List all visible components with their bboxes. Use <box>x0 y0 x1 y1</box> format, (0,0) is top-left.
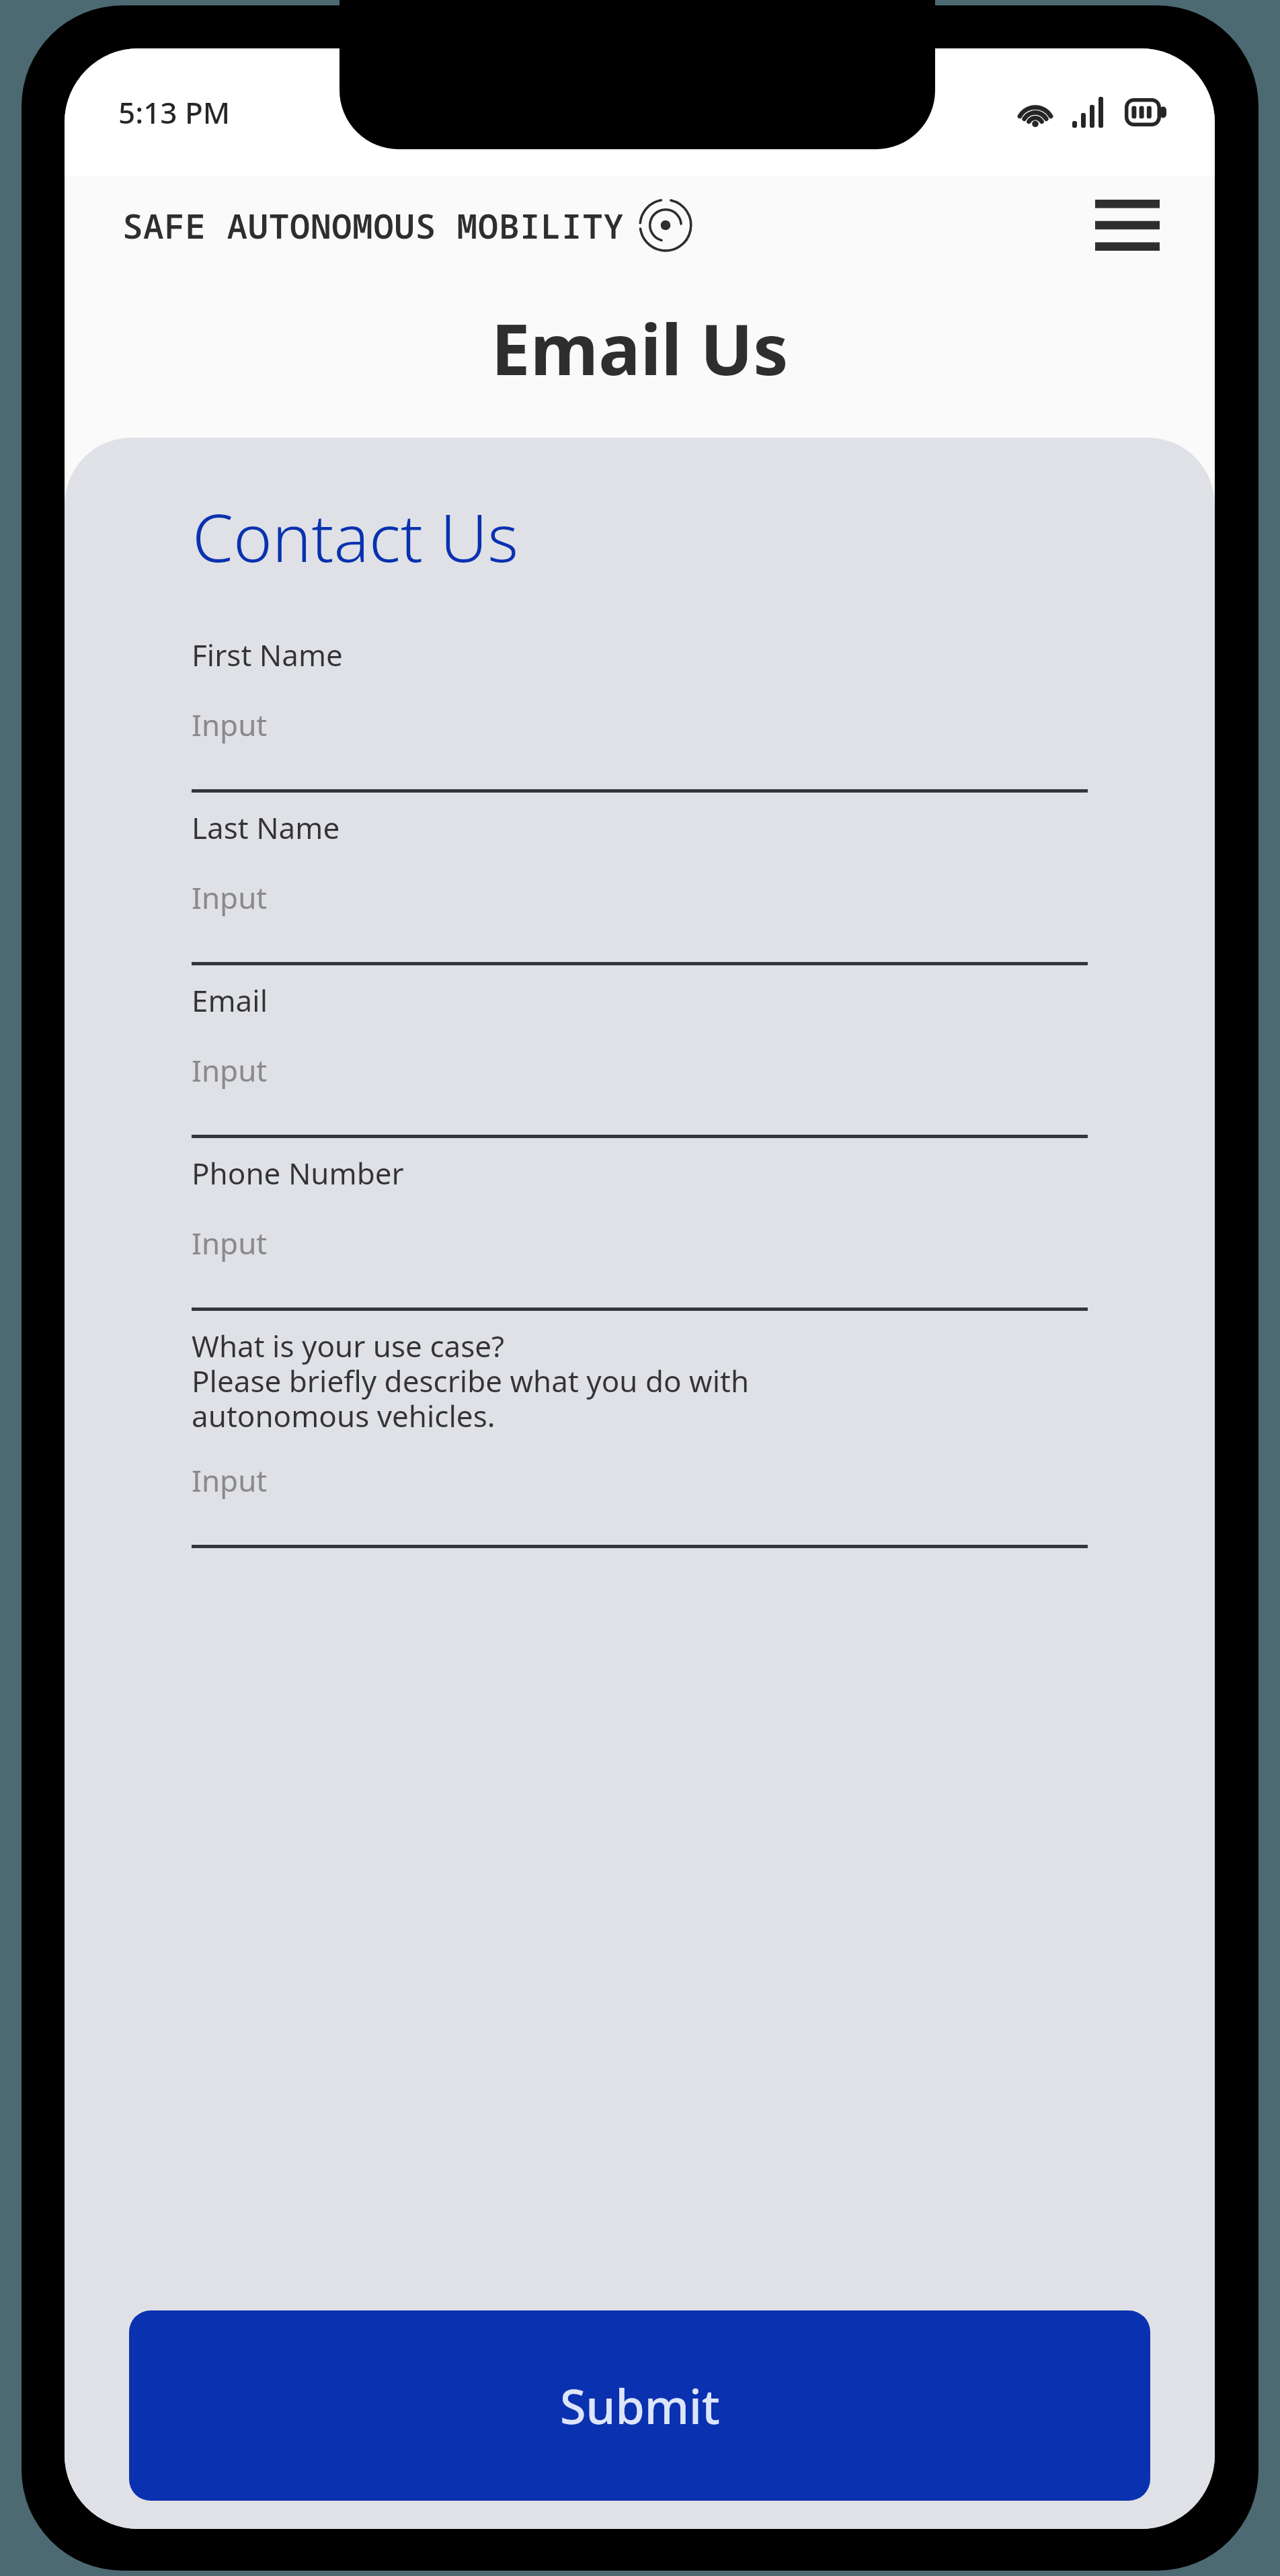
staticText: Phone Number <box>192 1153 404 1193</box>
button[interactable]: Input <box>192 1223 1088 1263</box>
staticText: 5:13 PM <box>118 92 231 132</box>
staticText: SAFE AUTONOMOUS MOBILITY <box>122 202 625 248</box>
button[interactable]: Input <box>192 705 1088 745</box>
staticText: Input <box>192 1460 268 1500</box>
button[interactable]: Input <box>192 1460 1088 1500</box>
staticText: First Name <box>192 635 343 675</box>
staticText: Submit <box>560 2374 720 2438</box>
staticText: Input <box>192 1050 268 1090</box>
staticText: Contact Us <box>192 491 519 581</box>
button[interactable]: Menu <box>1087 192 1168 259</box>
staticText: Last Name <box>192 807 340 848</box>
staticText: Input <box>192 1223 268 1263</box>
button[interactable]: Input <box>192 877 1088 918</box>
staticText: Input <box>192 877 268 918</box>
button[interactable]: Input <box>192 1050 1088 1090</box>
button[interactable]: Submit <box>129 2310 1150 2501</box>
staticText: What is your use case? Please briefly de… <box>192 1326 750 1436</box>
staticText: Input <box>192 705 268 745</box>
staticText: Email <box>192 980 268 1020</box>
staticText: Email Us <box>65 300 1215 396</box>
